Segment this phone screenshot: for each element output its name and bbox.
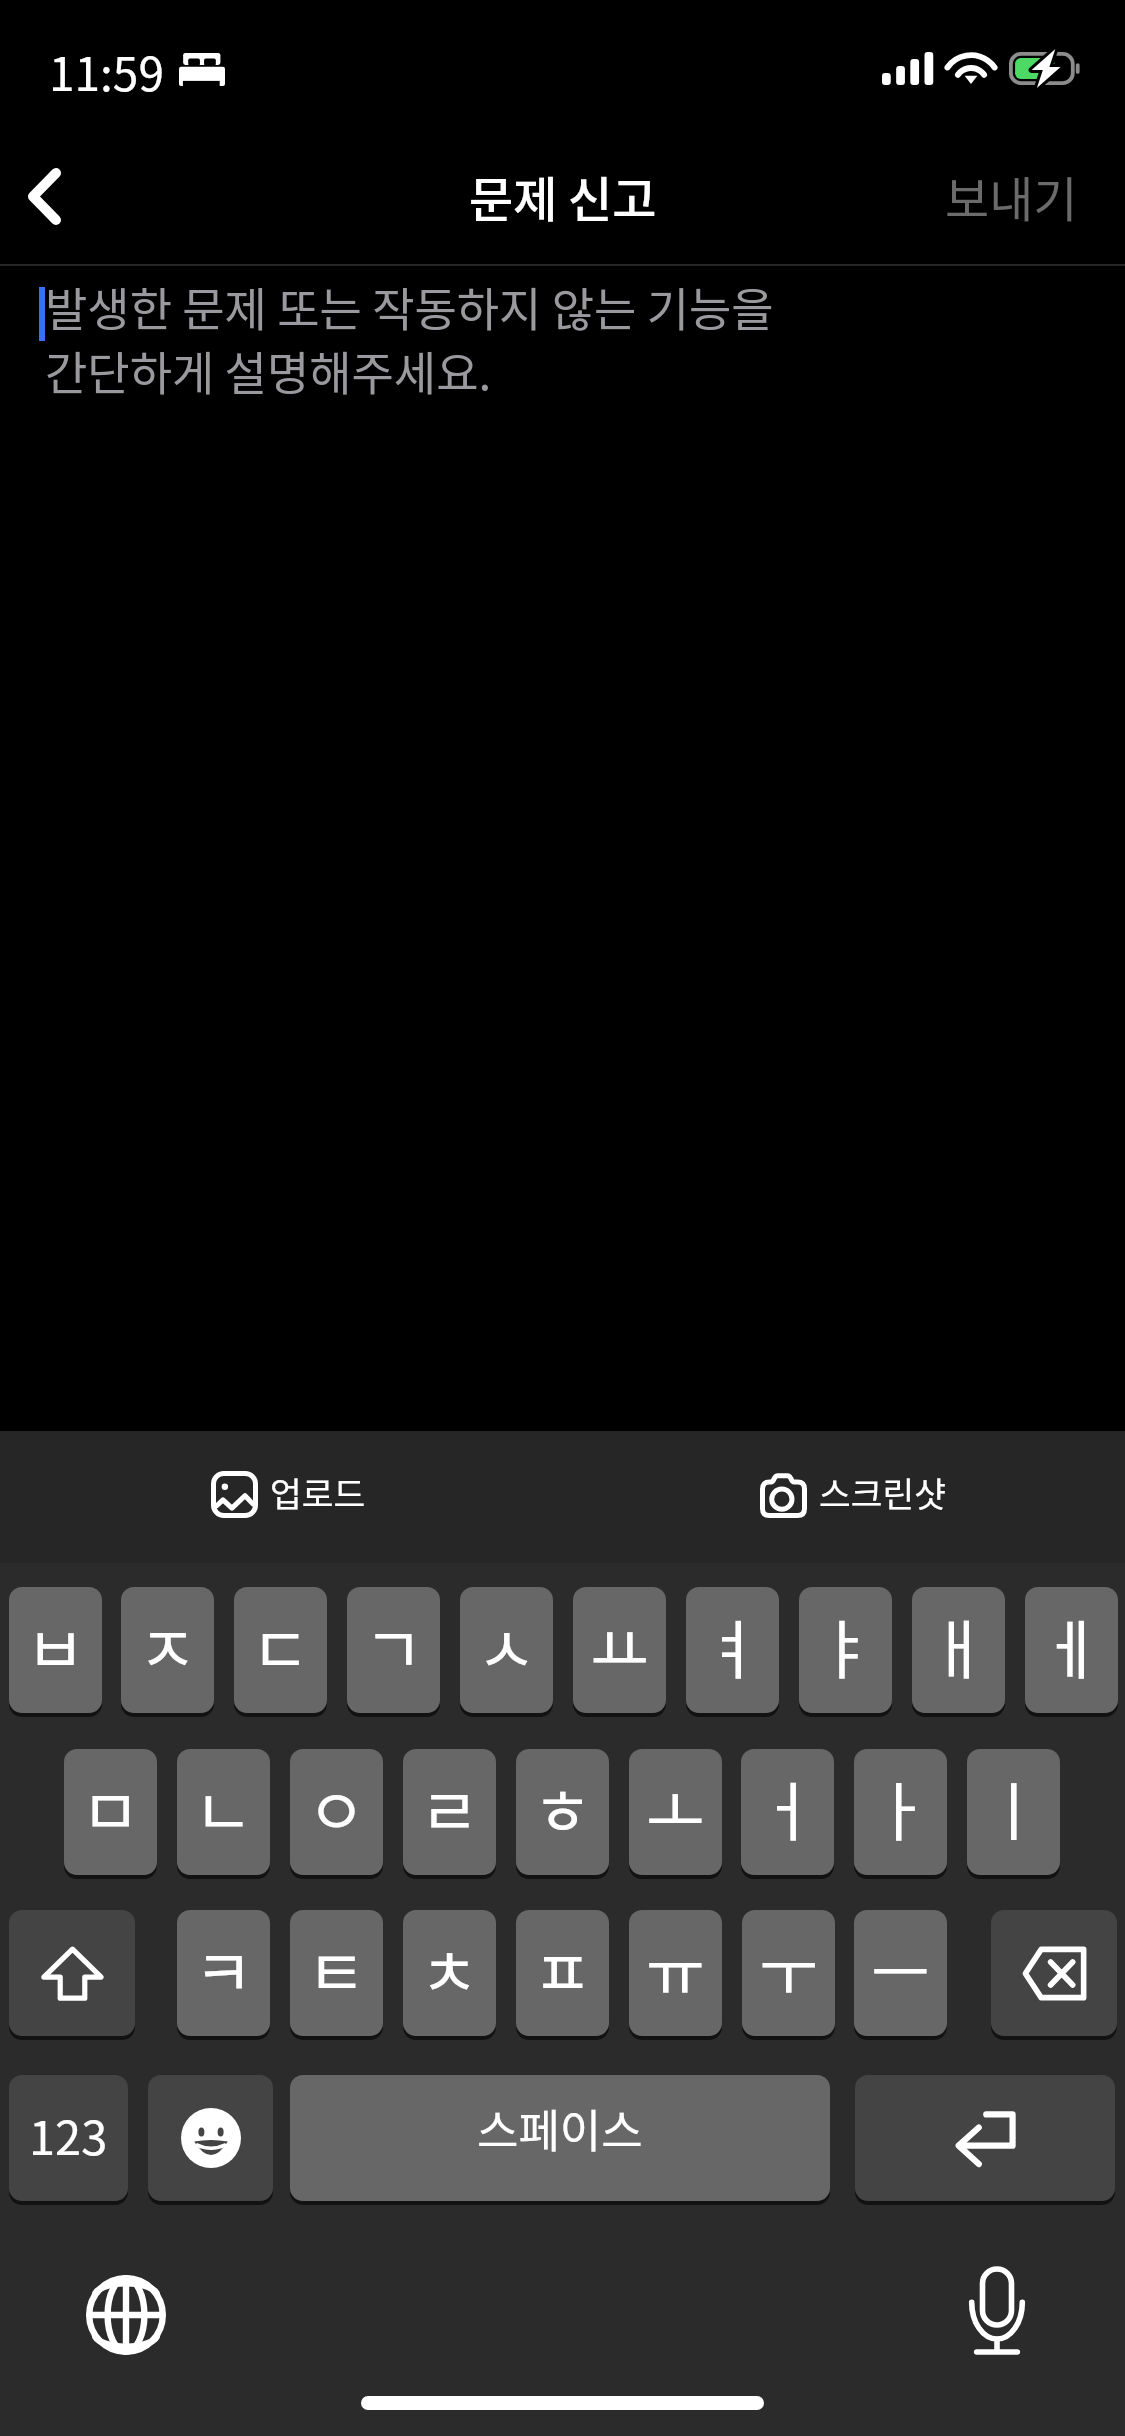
button[interactable]: Emoji	[148, 2075, 273, 2201]
staticText: ㅇ	[307, 1761, 366, 1854]
staticText: ㅅ	[477, 1599, 536, 1692]
button[interactable]: ㅈ	[121, 1587, 214, 1713]
button[interactable]: 스크린샷	[742, 1455, 964, 1533]
staticText: 간단하게 설명해주세요.	[45, 337, 492, 404]
button[interactable]: ㅡ	[854, 1910, 947, 2036]
button[interactable]: ㅁ	[64, 1749, 157, 1875]
button[interactable]: ㅍ	[516, 1910, 609, 2036]
button[interactable]: ㅠ	[629, 1910, 722, 2036]
button[interactable]: Shift	[9, 1910, 135, 2036]
button[interactable]: Backspace	[991, 1910, 1117, 2036]
button[interactable]: Back	[0, 132, 89, 260]
staticText: ㄷ	[251, 1599, 310, 1692]
button[interactable]: ㅅ	[460, 1587, 553, 1713]
staticText: ㅔ	[1042, 1599, 1101, 1692]
staticText: ㅡ	[871, 1922, 930, 2015]
button[interactable]: 123	[9, 2075, 128, 2201]
staticText: ㅌ	[307, 1922, 366, 2015]
button[interactable]: 스페이스	[290, 2075, 830, 2201]
staticText: 보내기	[945, 161, 1078, 231]
staticText: ㅜ	[759, 1922, 818, 2015]
staticText: ㅂ	[26, 1599, 85, 1692]
staticText: ㅈ	[138, 1599, 197, 1692]
staticText: ㄴ	[194, 1761, 253, 1854]
staticText: 발생한 문제 또는 작동하지 않는 기능을	[45, 273, 774, 340]
button[interactable]: ㅓ	[741, 1749, 834, 1875]
staticText: ㅏ	[871, 1761, 930, 1854]
button[interactable]: Next keyboard	[82, 2271, 170, 2359]
button[interactable]: ㄷ	[234, 1587, 327, 1713]
button[interactable]: ㅌ	[290, 1910, 383, 2036]
staticText: ㅋ	[194, 1922, 253, 2015]
button[interactable]: ㅐ	[912, 1587, 1005, 1713]
button[interactable]: ㅛ	[573, 1587, 666, 1713]
staticText: ㅠ	[646, 1922, 705, 2015]
button[interactable]: 보내기	[905, 132, 1125, 260]
staticText: 11:59	[49, 38, 164, 105]
button[interactable]: ㅜ	[742, 1910, 835, 2036]
button[interactable]: ㅣ	[967, 1749, 1060, 1875]
button[interactable]: ㅋ	[177, 1910, 270, 2036]
staticText: ㅍ	[533, 1922, 592, 2015]
staticText: ㅗ	[646, 1761, 705, 1854]
button[interactable]: ㅏ	[854, 1749, 947, 1875]
staticText: 문제 신고	[469, 161, 657, 231]
button[interactable]: ㅇ	[290, 1749, 383, 1875]
button[interactable]: ㅎ	[516, 1749, 609, 1875]
button[interactable]: ㅊ	[403, 1910, 496, 2036]
staticText: ㅊ	[420, 1922, 479, 2015]
staticText: 스크린샷	[819, 1467, 946, 1517]
button[interactable]: ㅕ	[686, 1587, 779, 1713]
staticText: ㅓ	[758, 1761, 817, 1854]
button[interactable]: ㅗ	[629, 1749, 722, 1875]
staticText: 업로드	[270, 1467, 366, 1517]
staticText: ㅐ	[929, 1599, 988, 1692]
staticText: 스페이스	[477, 2096, 643, 2161]
staticText: 123	[29, 2100, 108, 2168]
button[interactable]: Dictation	[961, 2261, 1033, 2361]
staticText: ㅁ	[81, 1761, 140, 1854]
button[interactable]: ㅔ	[1025, 1587, 1118, 1713]
button[interactable]: ㅂ	[9, 1587, 102, 1713]
staticText: ㄱ	[364, 1599, 423, 1692]
button[interactable]: ㄹ	[403, 1749, 496, 1875]
staticText: ㅛ	[590, 1599, 649, 1692]
button[interactable]: ㄴ	[177, 1749, 270, 1875]
staticText: ㅣ	[984, 1761, 1043, 1854]
staticText: ㄹ	[420, 1761, 479, 1854]
button[interactable]: 업로드	[193, 1455, 384, 1533]
staticText: ㅕ	[703, 1599, 762, 1692]
staticText: ㅎ	[533, 1761, 592, 1854]
staticText: ㅑ	[816, 1599, 875, 1692]
button[interactable]: ㄱ	[347, 1587, 440, 1713]
button[interactable]: ㅑ	[799, 1587, 892, 1713]
button[interactable]: Return	[855, 2075, 1115, 2201]
